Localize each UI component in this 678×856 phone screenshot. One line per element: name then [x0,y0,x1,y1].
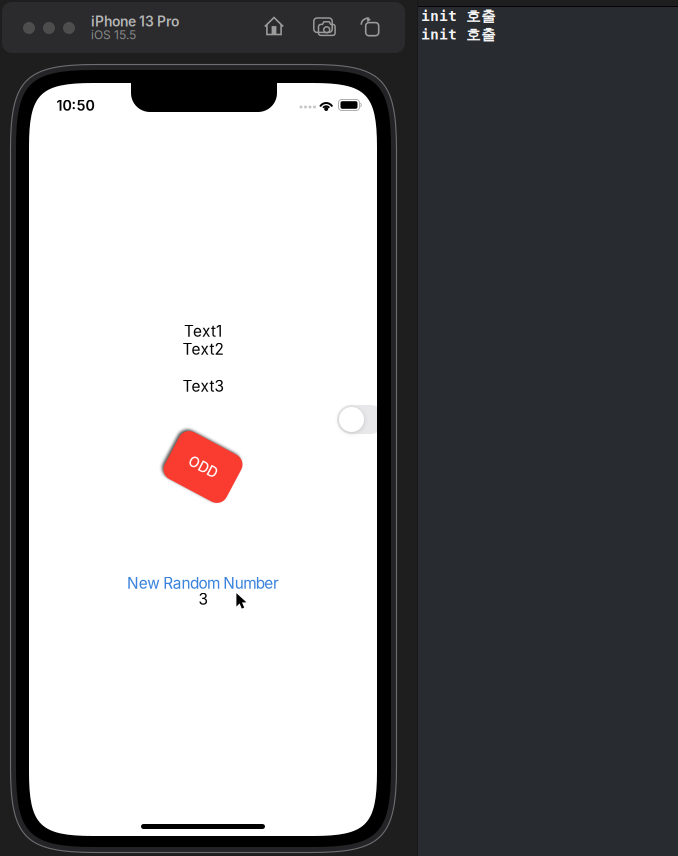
staticText: init 호출 [421,7,496,25]
button[interactable]: Home [264,16,285,35]
staticText: init 호출 [421,25,496,44]
staticText: iOS 15.5 [91,27,136,42]
staticText: ODD [187,458,218,475]
staticText: 3 [198,590,207,609]
staticText: Text1 [184,322,222,341]
button[interactable]: Minimize [43,22,55,34]
button[interactable]: Toggle [337,405,385,434]
button[interactable]: Record screen [360,17,379,36]
staticText: iPhone 13 Pro [91,13,179,30]
staticText: Text3 [182,377,223,396]
button[interactable]: Zoom [63,22,75,34]
staticText: 10:50 [56,97,94,114]
staticText: New Random Number [127,574,279,593]
button[interactable]: Screenshot [314,18,337,37]
staticText: Text2 [182,340,223,359]
button[interactable]: Close [23,22,35,34]
button[interactable]: New Random Number [29,574,377,593]
